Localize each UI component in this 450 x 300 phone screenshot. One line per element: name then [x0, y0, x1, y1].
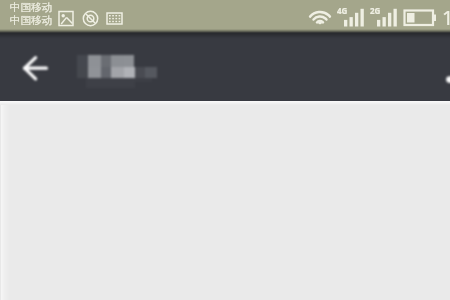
button[interactable]: [70, 48, 170, 88]
staticText: 中国移动: [10, 14, 52, 27]
staticText: 1: [442, 4, 450, 31]
staticText: 中国移动: [10, 1, 52, 14]
button[interactable]: Back: [11, 44, 59, 90]
staticText: 4G: [337, 5, 348, 16]
button[interactable]: More options: [426, 45, 450, 93]
staticText: 2G: [370, 5, 381, 16]
